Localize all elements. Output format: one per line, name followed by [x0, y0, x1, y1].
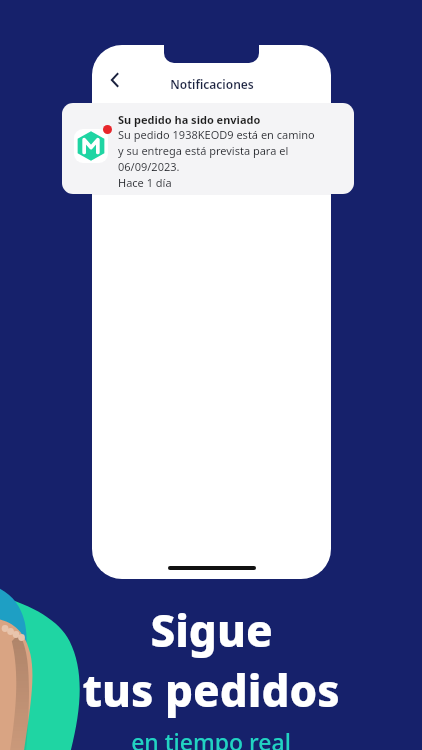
button[interactable]: Su pedido ha sido enviado: [62, 103, 354, 194]
button[interactable]: Back: [98, 63, 132, 97]
staticText: tus pedidos: [82, 660, 340, 720]
staticText: Notificaciones: [170, 76, 254, 92]
staticText: Su pedido 1938KEOD9 está en camino y su …: [118, 127, 315, 190]
staticText: en tiempo real: [131, 726, 291, 750]
staticText: Sigue: [150, 600, 273, 660]
staticText: Su pedido ha sido enviado: [118, 112, 261, 127]
